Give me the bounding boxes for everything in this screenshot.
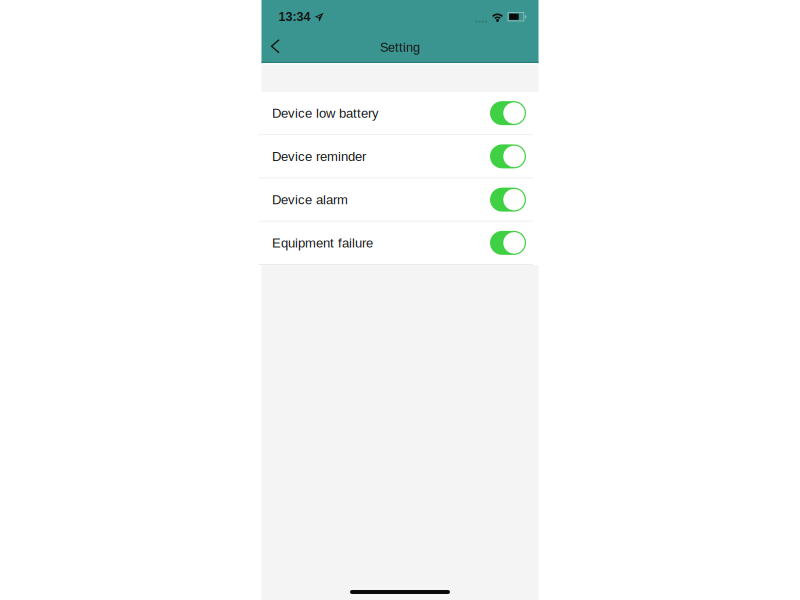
button[interactable]: Device reminder [261,135,538,178]
button[interactable]: Back [261,31,288,62]
button[interactable]: Equipment failure [261,222,538,265]
staticText: Device alarm [272,192,348,207]
button[interactable]: Device alarm [261,178,538,222]
staticText: Device low battery [272,106,379,120]
staticText: Equipment failure [272,236,373,250]
staticText: Device reminder [272,149,366,164]
staticText: 13:34 [278,10,310,24]
staticText: Setting [380,40,420,54]
button[interactable]: Device low battery [261,92,538,135]
